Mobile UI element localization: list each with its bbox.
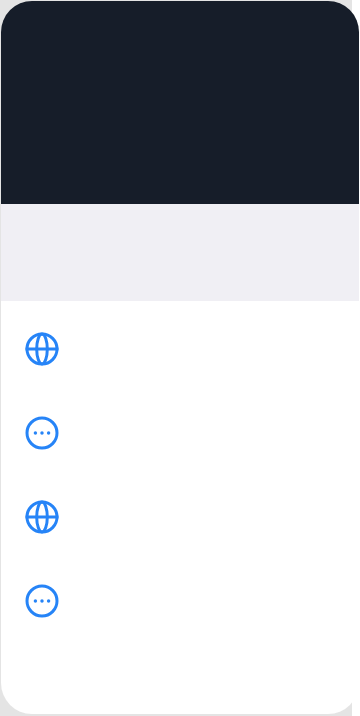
- button[interactable]: More: [1, 559, 359, 643]
- button[interactable]: Language: [1, 307, 359, 391]
- button[interactable]: Region: [1, 475, 359, 559]
- button[interactable]: More options: [1, 391, 359, 475]
